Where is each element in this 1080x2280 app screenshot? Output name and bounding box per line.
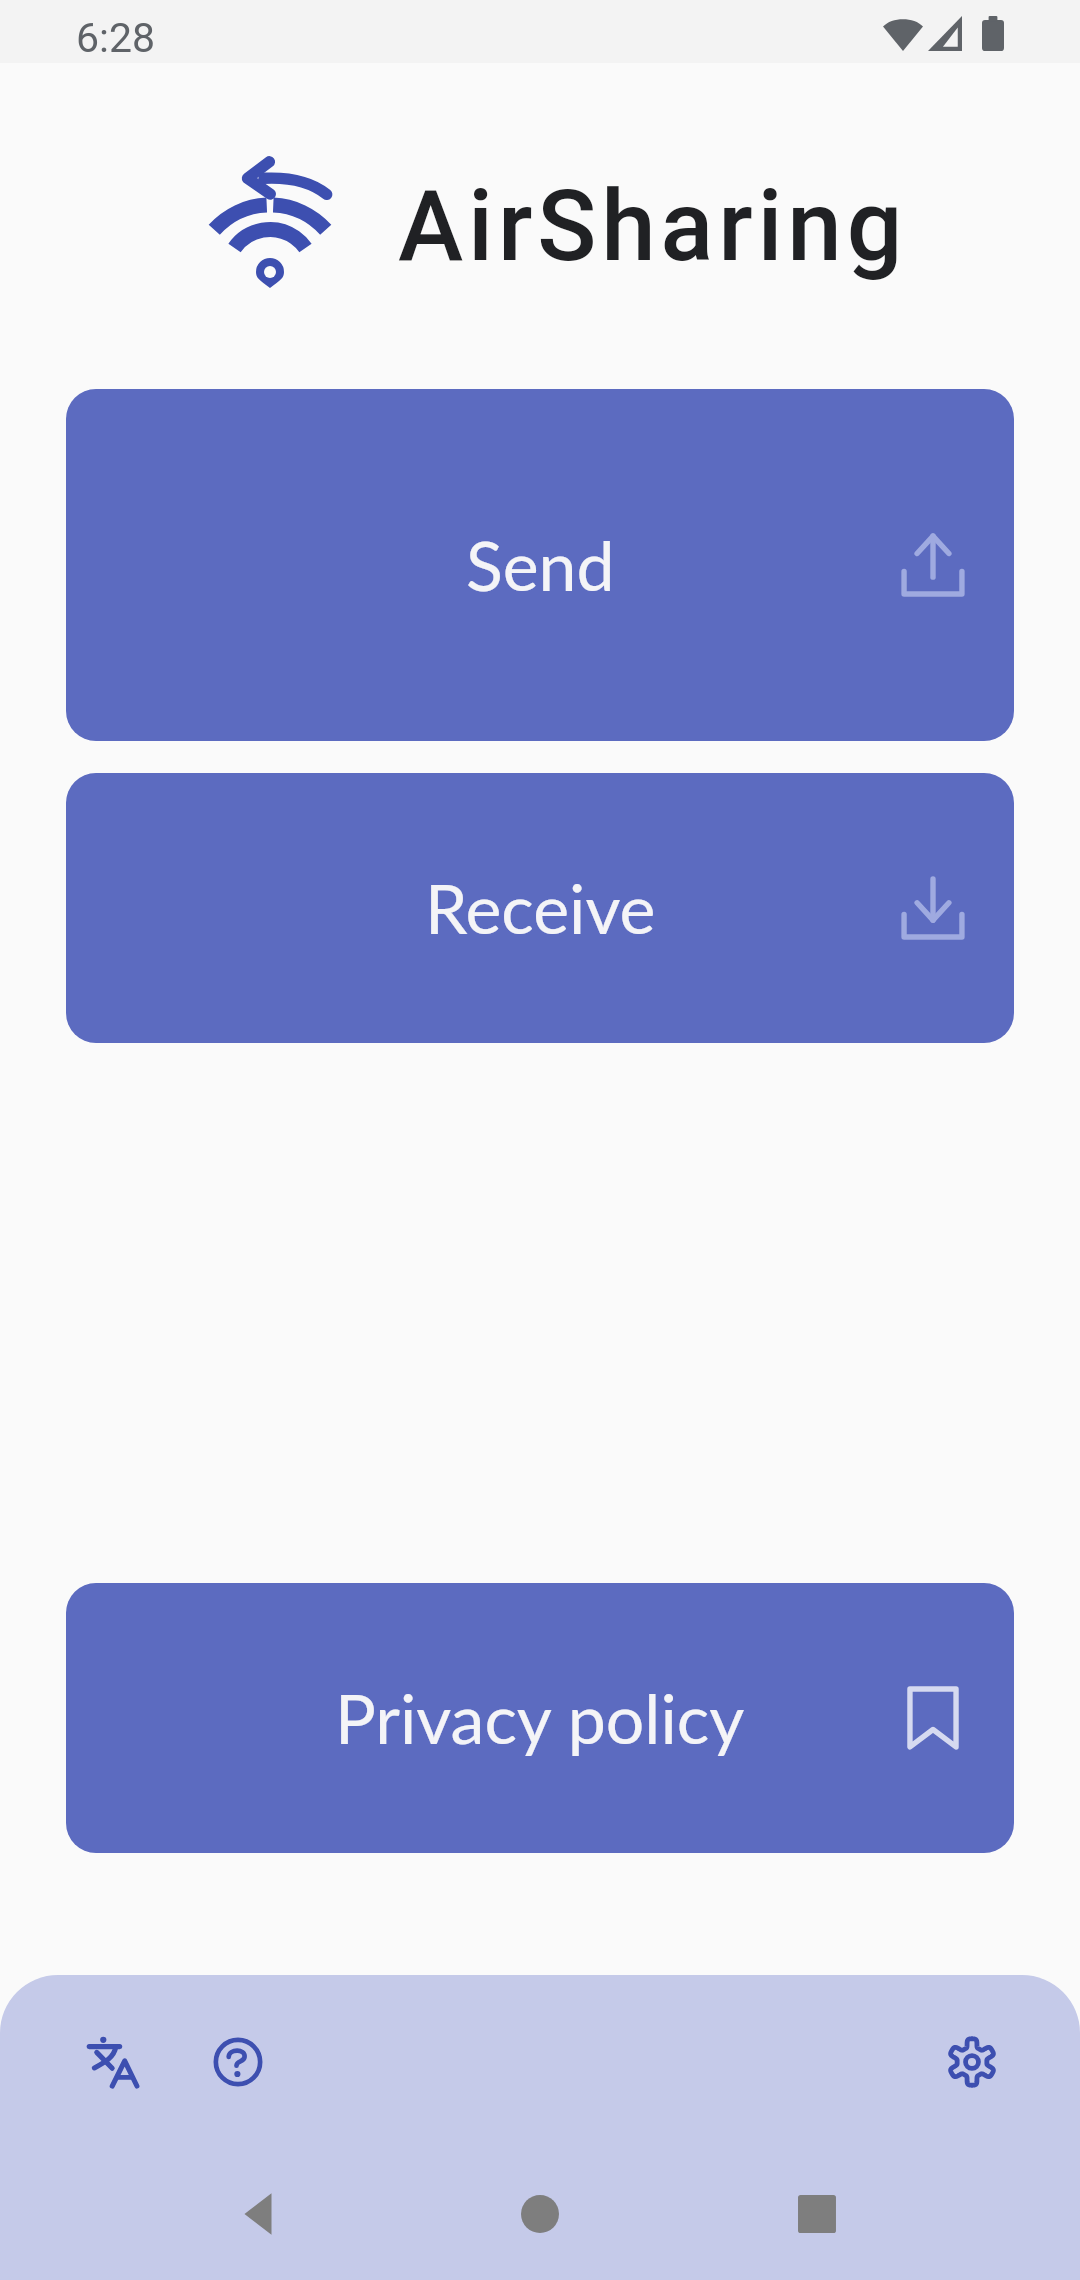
button[interactable]: Home [485, 2159, 595, 2269]
staticText: 6:28 [76, 14, 156, 62]
button[interactable]: Back [204, 2159, 314, 2269]
button[interactable]: Send [66, 389, 1014, 741]
button[interactable]: Recents [762, 2159, 872, 2269]
button[interactable]: Translate [65, 2014, 161, 2110]
button[interactable]: Receive [66, 773, 1014, 1043]
staticText: AirSharing [398, 169, 908, 284]
button[interactable]: Settings [924, 2014, 1020, 2110]
staticText: Privacy policy [335, 1677, 745, 1759]
button[interactable]: Privacy policy [66, 1583, 1014, 1853]
staticText: Send [466, 524, 615, 606]
button[interactable]: Help [190, 2014, 286, 2110]
staticText: Receive [425, 867, 656, 949]
